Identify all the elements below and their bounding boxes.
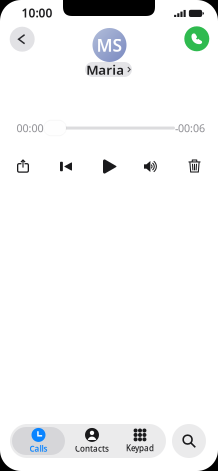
staticText: 00:00 — [16, 121, 43, 135]
button[interactable]: Calls — [12, 427, 65, 455]
staticText: MS — [96, 33, 122, 56]
button[interactable]: Call — [184, 26, 209, 51]
button[interactable]: Delete — [179, 155, 209, 177]
staticText: -00:06 — [175, 121, 205, 135]
button[interactable]: Keypad — [116, 427, 164, 455]
button[interactable]: Back — [10, 27, 35, 52]
button[interactable]: Volume — [137, 155, 167, 177]
button[interactable]: Share — [8, 155, 38, 177]
staticText: Contacts — [75, 443, 109, 454]
staticText: Calls — [29, 443, 47, 454]
button[interactable]: Search — [172, 424, 206, 458]
button[interactable]: Play — [95, 155, 125, 177]
staticText: Maria — [86, 61, 124, 78]
staticText: Keypad — [126, 443, 154, 453]
staticText: 10:00 — [21, 5, 52, 21]
button[interactable]: Contacts — [68, 427, 116, 455]
button[interactable]: Maria — [85, 62, 132, 77]
button[interactable]: Rewind — [51, 155, 81, 177]
